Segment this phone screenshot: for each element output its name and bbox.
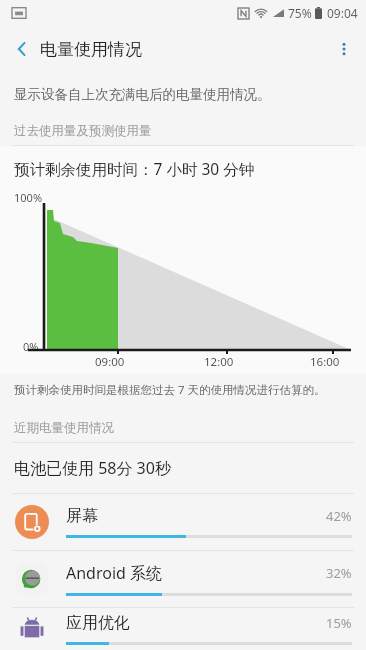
button[interactable]: Android 系统 (0, 551, 366, 607)
staticText: 电池已使用 58分 30秒 (14, 457, 171, 479)
button[interactable]: Back (0, 27, 44, 71)
staticText: 0% (23, 339, 39, 354)
staticText: 100% (14, 190, 43, 205)
staticText: 预计剩余使用时间：7 小时 30 分钟 (14, 158, 255, 179)
staticText: 15% (326, 614, 352, 632)
button[interactable]: 应用优化 (0, 608, 366, 650)
staticText: 近期电量使用情况 (14, 420, 114, 436)
staticText: 09:00 (95, 354, 141, 370)
staticText: 屏幕 (66, 506, 326, 526)
staticText: Android 系统 (66, 562, 326, 584)
staticText: 显示设备自上次充满电后的电量使用情况。 (14, 86, 271, 103)
staticText: 预计剩余使用时间是根据您过去 7 天的使用情况进行估算的。 (14, 382, 326, 398)
staticText: 42% (326, 507, 352, 525)
staticText: 32% (326, 564, 352, 582)
staticText: 16:00 (310, 354, 340, 370)
staticText: 12:00 (204, 354, 250, 370)
staticText: 电量使用情况 (40, 39, 142, 60)
staticText: 应用优化 (66, 613, 326, 633)
button[interactable]: 屏幕 (0, 494, 366, 550)
staticText: 75% (288, 5, 312, 21)
button[interactable]: More options (322, 27, 366, 71)
staticText: 过去使用量及预测使用量 (14, 123, 152, 139)
staticText: 09:04 (327, 5, 358, 21)
